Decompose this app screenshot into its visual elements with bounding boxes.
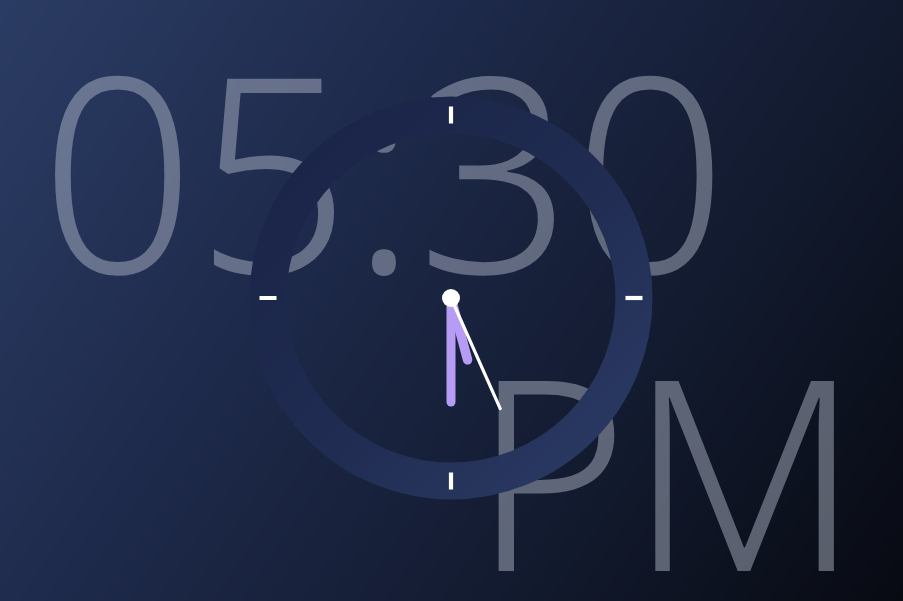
button[interactable]: Analog clock showing 05:30 PM — [0, 0, 903, 601]
